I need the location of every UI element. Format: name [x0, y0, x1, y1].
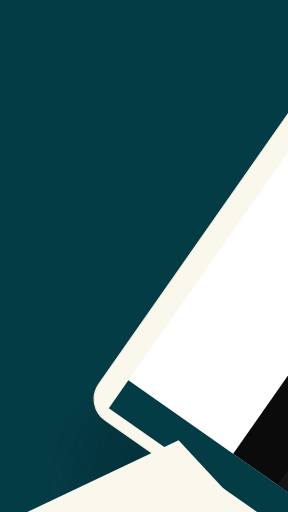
button[interactable]: Device preview	[0, 0, 288, 512]
